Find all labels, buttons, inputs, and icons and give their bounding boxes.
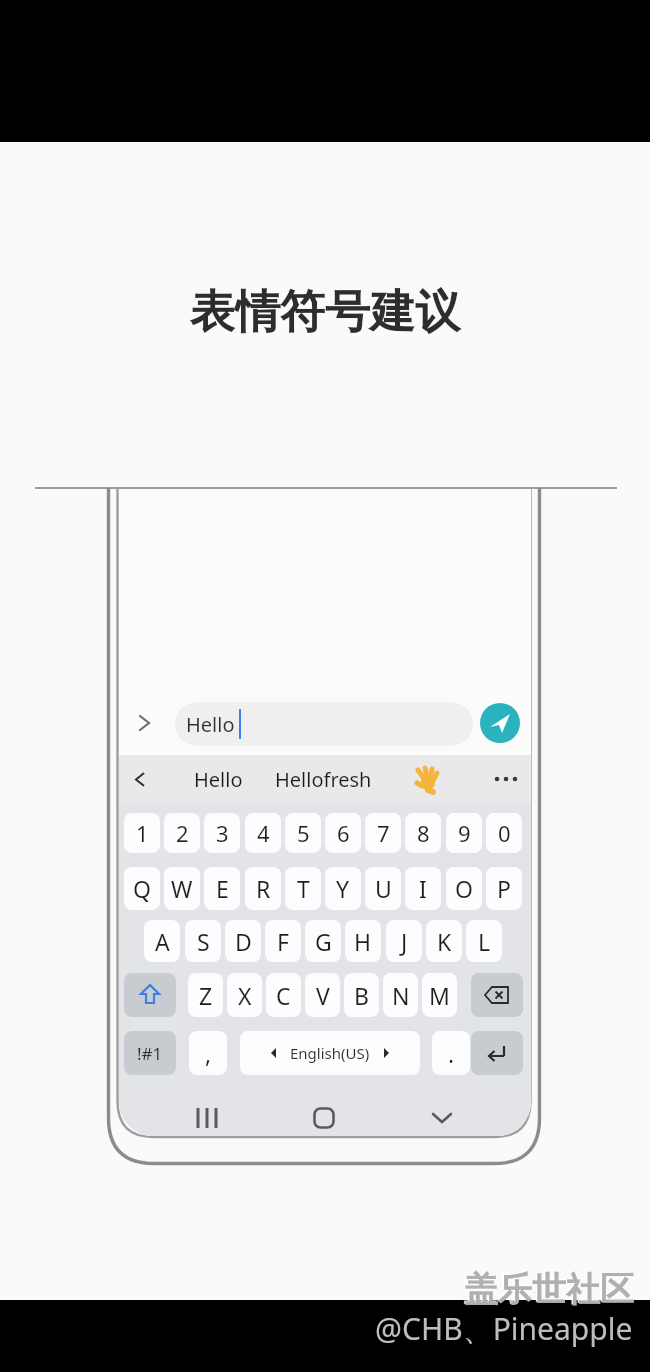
- staticText: 表情符号建议: [190, 284, 460, 341]
- staticText: 2: [176, 818, 189, 848]
- button[interactable]: 8: [405, 813, 441, 853]
- staticText: U: [375, 873, 392, 904]
- staticText: 0: [498, 818, 511, 848]
- button[interactable]: ,: [189, 1031, 227, 1075]
- staticText: English(US): [290, 1043, 370, 1063]
- staticText: Q: [133, 873, 151, 904]
- button[interactable]: L: [466, 920, 502, 962]
- button[interactable]: 5: [285, 813, 321, 853]
- button[interactable]: M: [422, 973, 457, 1017]
- button[interactable]: Z: [188, 973, 223, 1017]
- button[interactable]: [480, 703, 520, 743]
- button[interactable]: Y: [325, 867, 361, 910]
- button[interactable]: 9: [446, 813, 482, 853]
- button[interactable]: [124, 973, 176, 1017]
- button[interactable]: Hellofresh: [271, 755, 375, 803]
- staticText: R: [256, 873, 271, 904]
- staticText: 6: [337, 818, 350, 848]
- staticText: Z: [199, 980, 213, 1011]
- staticText: 1: [136, 818, 149, 848]
- button[interactable]: [493, 772, 519, 786]
- staticText: L: [478, 926, 491, 957]
- staticText: Y: [336, 873, 350, 904]
- button[interactable]: S: [185, 920, 221, 962]
- staticText: Hello: [186, 711, 235, 738]
- staticText: .: [448, 1038, 455, 1069]
- staticText: H: [354, 926, 372, 957]
- staticText: A: [155, 926, 170, 957]
- staticText: K: [437, 926, 452, 957]
- button[interactable]: [413, 765, 441, 793]
- staticText: O: [455, 873, 473, 904]
- button[interactable]: E: [204, 867, 240, 910]
- staticText: G: [315, 926, 332, 957]
- staticText: I: [419, 873, 427, 904]
- button[interactable]: J: [386, 920, 422, 962]
- button[interactable]: F: [265, 920, 301, 962]
- staticText: 8: [417, 818, 430, 848]
- button[interactable]: [195, 1106, 219, 1130]
- staticText: 5: [297, 818, 310, 848]
- button[interactable]: U: [365, 867, 401, 910]
- staticText: X: [238, 980, 252, 1011]
- button[interactable]: C: [266, 973, 301, 1017]
- button[interactable]: [313, 1107, 335, 1129]
- button[interactable]: Hello: [175, 702, 473, 746]
- staticText: T: [297, 873, 310, 904]
- button[interactable]: P: [486, 867, 522, 910]
- staticText: ,: [205, 1038, 212, 1069]
- button[interactable]: [471, 973, 523, 1017]
- staticText: W: [171, 873, 193, 904]
- button[interactable]: 3: [204, 813, 240, 853]
- button[interactable]: R: [245, 867, 281, 910]
- staticText: @CHB、Pineapple: [375, 1308, 633, 1349]
- button[interactable]: W: [164, 867, 200, 910]
- button[interactable]: A: [144, 920, 180, 962]
- staticText: 9: [458, 818, 471, 848]
- button[interactable]: 4: [245, 813, 281, 853]
- button[interactable]: I: [405, 867, 441, 910]
- staticText: M: [429, 980, 450, 1011]
- button[interactable]: 2: [164, 813, 200, 853]
- staticText: 4: [257, 818, 270, 848]
- button[interactable]: B: [344, 973, 379, 1017]
- button[interactable]: K: [426, 920, 462, 962]
- button[interactable]: !#1: [124, 1031, 176, 1075]
- staticText: Hellofresh: [275, 766, 372, 793]
- button[interactable]: T: [285, 867, 321, 910]
- button[interactable]: G: [305, 920, 341, 962]
- button[interactable]: [431, 1111, 453, 1125]
- staticText: E: [216, 873, 229, 904]
- staticText: !#1: [137, 1042, 163, 1065]
- button[interactable]: Q: [124, 867, 160, 910]
- button[interactable]: X: [227, 973, 262, 1017]
- staticText: C: [276, 980, 291, 1011]
- staticText: 盖乐世社区: [464, 1268, 634, 1311]
- button[interactable]: 0: [486, 813, 522, 853]
- staticText: 7: [377, 818, 390, 848]
- button[interactable]: English(US): [240, 1031, 420, 1075]
- staticText: Hello: [194, 766, 243, 793]
- button[interactable]: [471, 1031, 523, 1075]
- button[interactable]: Hello: [179, 755, 257, 803]
- button[interactable]: 1: [124, 813, 160, 853]
- button[interactable]: V: [305, 973, 340, 1017]
- staticText: P: [497, 873, 511, 904]
- button[interactable]: O: [446, 867, 482, 910]
- staticText: J: [401, 926, 408, 957]
- button[interactable]: D: [225, 920, 261, 962]
- button[interactable]: H: [345, 920, 381, 962]
- staticText: D: [235, 926, 252, 957]
- button[interactable]: .: [432, 1031, 470, 1075]
- staticText: F: [277, 926, 289, 957]
- staticText: N: [392, 980, 410, 1011]
- staticText: V: [316, 980, 330, 1011]
- staticText: B: [354, 980, 369, 1011]
- staticText: S: [197, 926, 210, 957]
- staticText: 3: [216, 818, 229, 848]
- button[interactable]: 6: [325, 813, 361, 853]
- button[interactable]: 7: [365, 813, 401, 853]
- button[interactable]: N: [383, 973, 418, 1017]
